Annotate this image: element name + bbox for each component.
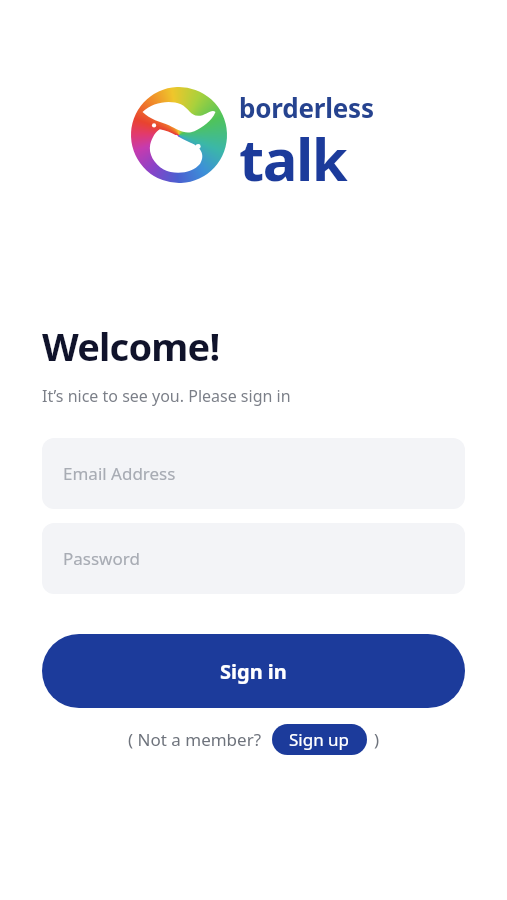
- staticText: Sign up: [289, 728, 350, 751]
- staticText: It’s nice to see you. Please sign in: [42, 385, 291, 407]
- button[interactable]: Sign up: [272, 724, 367, 755]
- button[interactable]: Email Address: [42, 438, 465, 509]
- staticText: Email Address: [63, 462, 176, 485]
- other: Borderless Talk logo: [131, 87, 227, 183]
- staticText: Password: [63, 547, 140, 570]
- staticText: ): [374, 728, 380, 751]
- staticText: Welcome!: [42, 320, 220, 372]
- staticText: ( Not a member?: [128, 728, 262, 751]
- button[interactable]: Password: [42, 523, 465, 594]
- button[interactable]: Sign in: [42, 634, 465, 708]
- staticText: talk: [239, 119, 347, 198]
- staticText: borderless: [239, 90, 374, 125]
- staticText: Sign in: [220, 658, 287, 685]
